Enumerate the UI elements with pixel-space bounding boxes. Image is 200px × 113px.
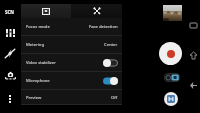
button[interactable]: Video stabilizer bbox=[21, 54, 122, 72]
button[interactable]: Camera modes bbox=[164, 92, 178, 106]
staticText: Face detection bbox=[89, 24, 118, 30]
button[interactable]: Flash off bbox=[0, 46, 20, 61]
staticText: Video stabilizer bbox=[26, 60, 56, 66]
staticText: Center bbox=[104, 42, 118, 48]
button[interactable]: Focus mode bbox=[21, 18, 122, 36]
staticText: SCN bbox=[5, 9, 15, 15]
button[interactable]: Capture mode bbox=[0, 68, 20, 83]
staticText: Focus mode bbox=[26, 24, 50, 30]
staticText: Microphone bbox=[26, 78, 50, 84]
button[interactable]: Back bbox=[186, 78, 200, 92]
staticText: Off bbox=[111, 95, 118, 101]
button[interactable]: Scene mode bbox=[0, 3, 20, 20]
button[interactable]: More options bbox=[0, 91, 20, 106]
button[interactable]: Record bbox=[159, 42, 182, 65]
staticText: Metering bbox=[26, 42, 45, 48]
staticText: Preview bbox=[26, 95, 42, 101]
button[interactable]: Home bbox=[186, 48, 200, 62]
button[interactable]: Tools bbox=[71, 4, 122, 18]
button[interactable]: Metering bbox=[21, 36, 122, 54]
button[interactable]: Recents bbox=[186, 18, 200, 32]
button[interactable]: Switch camera mode bbox=[164, 73, 180, 82]
button[interactable]: Gallery bbox=[163, 5, 182, 21]
button[interactable]: Microphone bbox=[21, 72, 122, 90]
button[interactable]: Adjust settings bbox=[0, 25, 20, 41]
button[interactable]: Preview bbox=[21, 90, 122, 105]
button[interactable]: Video settings bbox=[21, 4, 71, 18]
